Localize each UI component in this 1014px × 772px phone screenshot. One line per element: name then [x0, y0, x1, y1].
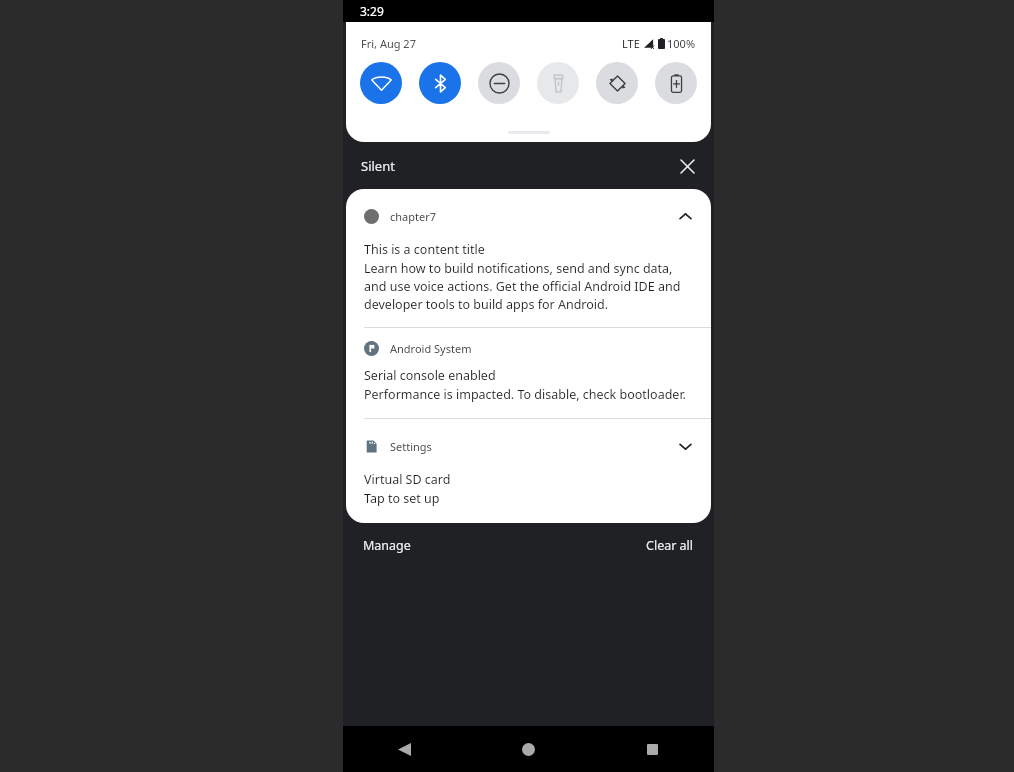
staticText: Performance is impacted. To disable, che…	[364, 386, 686, 403]
button[interactable]: Fri, Aug 27	[361, 36, 416, 51]
button[interactable]: chapter7	[346, 189, 711, 327]
staticText: Android System	[390, 341, 472, 356]
button[interactable]: Manage	[361, 531, 413, 560]
button[interactable]: Do not disturb	[478, 62, 520, 104]
button[interactable]: Settings	[346, 419, 711, 523]
staticText: This is a content title	[364, 241, 485, 258]
button[interactable]: Clear all	[644, 531, 696, 560]
button[interactable]: Wi-Fi	[360, 62, 402, 104]
button[interactable]: Back	[343, 726, 466, 772]
staticText: 100%	[667, 36, 696, 51]
staticText: 3:29	[360, 3, 384, 19]
staticText: Tap to set up	[364, 490, 440, 507]
staticText: Learn how to build notifications, send a…	[364, 260, 681, 313]
staticText: Serial console enabled	[364, 367, 496, 384]
button[interactable]: Flashlight	[537, 62, 579, 104]
button[interactable]: Collapse notification	[671, 202, 699, 230]
button[interactable]: Android System	[346, 328, 711, 418]
button[interactable]: Expand notification	[671, 432, 699, 460]
button[interactable]: Dismiss silent notifications	[672, 151, 702, 181]
button[interactable]: Battery saver	[655, 62, 697, 104]
button[interactable]: Home	[466, 726, 590, 772]
button[interactable]: Recent apps	[590, 726, 714, 772]
staticText: chapter7	[390, 209, 437, 224]
staticText: Clear all	[646, 537, 694, 554]
staticText: Settings	[390, 439, 432, 454]
staticText: Silent	[361, 157, 395, 175]
staticText: Manage	[363, 537, 411, 554]
button[interactable]: Bluetooth	[419, 62, 461, 104]
staticText: LTE	[622, 36, 640, 51]
staticText: Virtual SD card	[364, 471, 451, 488]
button[interactable]: Auto-rotate	[596, 62, 638, 104]
